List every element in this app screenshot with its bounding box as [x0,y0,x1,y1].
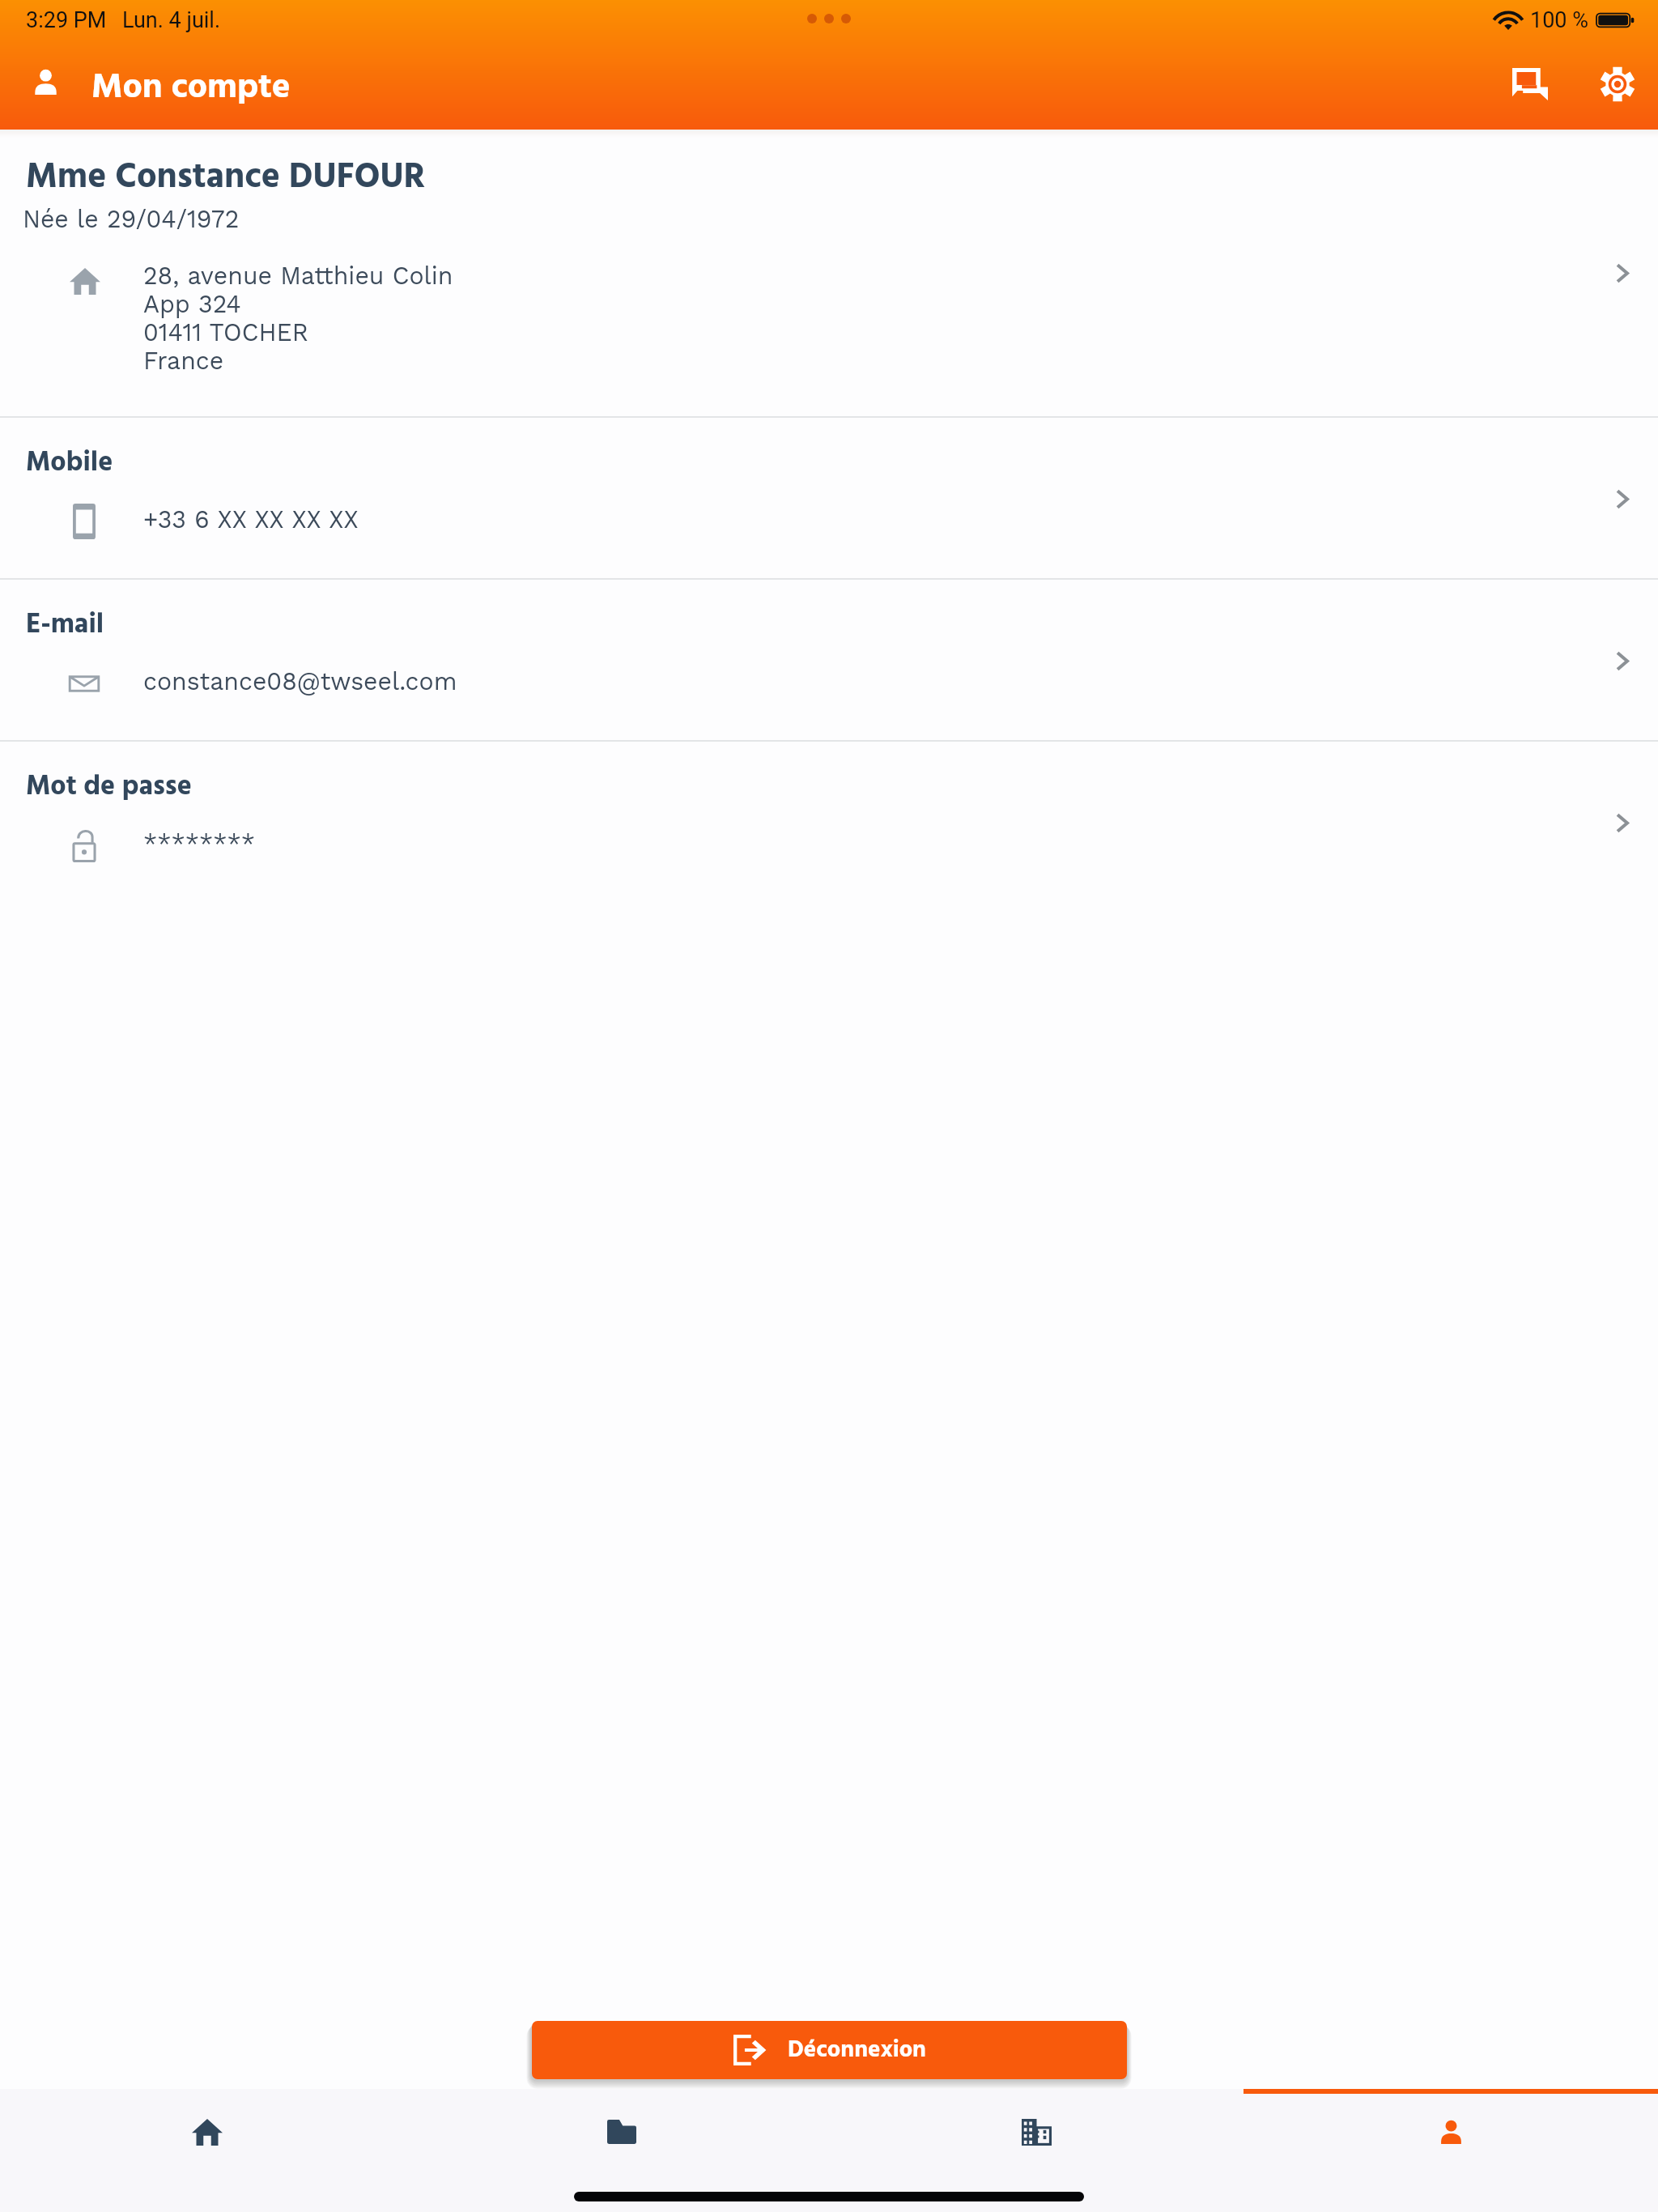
staticText: Mme Constance DUFOUR [26,150,426,206]
staticText: France [143,347,224,375]
staticText: Lun. 4 juil. [122,7,221,33]
button[interactable]: Accueil [0,2089,414,2180]
button[interactable]: Mon compte [1243,2089,1658,2180]
button[interactable]: E-mail [0,580,1658,740]
button[interactable]: Mme Constance DUFOUR [0,130,1658,416]
staticText: Née le 29/04/1972 [23,205,240,233]
staticText: ******** [143,829,256,857]
button[interactable]: Profil [11,48,79,116]
button[interactable]: Entreprises [829,2089,1243,2180]
staticText: Mot de passe [26,765,192,809]
button[interactable]: Dossiers [414,2089,829,2180]
staticText: +33 6 XX XX XX XX [143,505,359,534]
staticText: App 324 [143,290,241,318]
button[interactable]: Mobile [0,418,1658,578]
button[interactable]: Messagerie [1490,44,1571,125]
staticText: 100 % [1530,7,1588,33]
button[interactable]: Mot de passe [0,742,1658,902]
staticText: 01411 TOCHER [143,318,308,347]
staticText: 28, avenue Matthieu Colin [143,262,453,290]
staticText: E-mail [26,603,104,647]
staticText: Mobile [26,441,113,485]
button[interactable]: Paramètres [1577,44,1658,125]
staticText: 3:29 PM [26,7,107,33]
button[interactable]: Déconnexion [532,2021,1127,2079]
staticText: constance08@twseel.com [143,667,457,696]
staticText: Mon compte [91,61,291,117]
staticText: Déconnexion [788,2031,926,2069]
